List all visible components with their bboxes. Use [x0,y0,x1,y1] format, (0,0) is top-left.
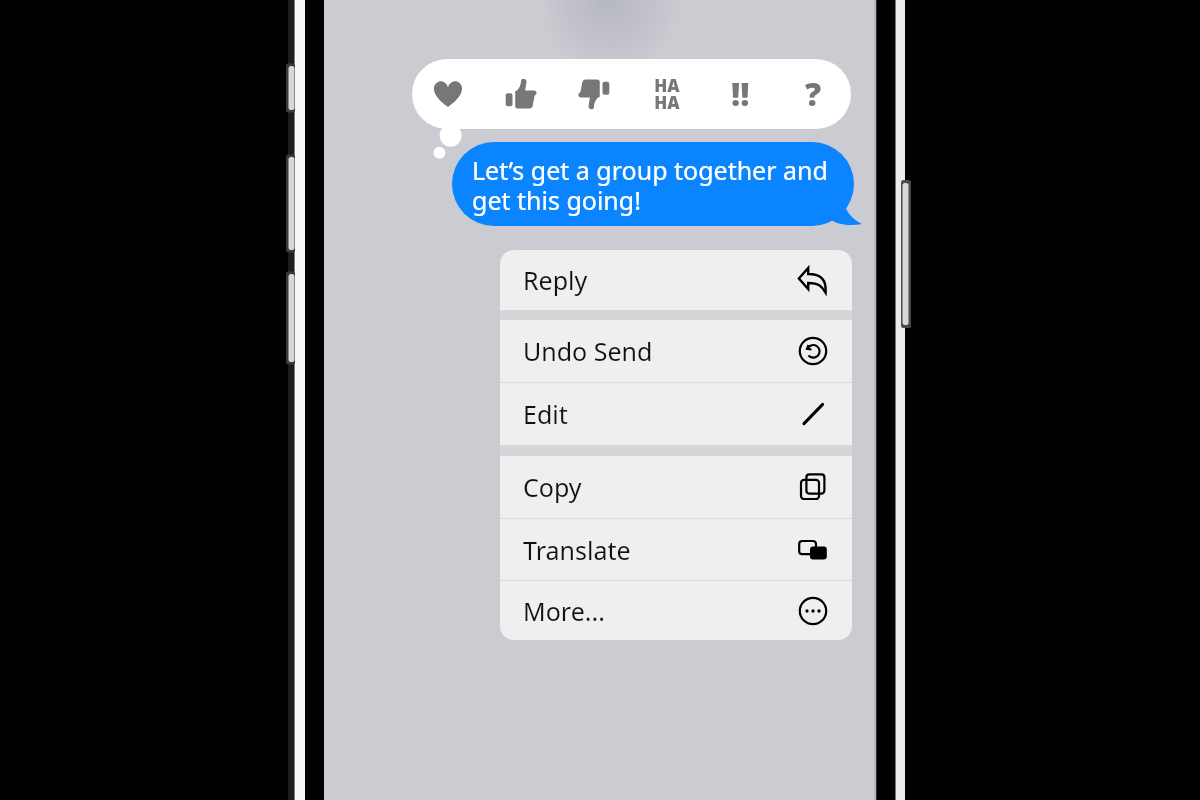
button[interactable]: Undo Send [500,320,852,382]
staticText: Edit [523,397,568,431]
staticText: ? [805,72,822,116]
button[interactable]: Haha [643,70,691,118]
button[interactable]: Translate [500,519,852,580]
staticText: HA HA [654,74,680,114]
button[interactable]: Reply [500,250,852,310]
staticText: More... [523,594,605,628]
button[interactable]: Edit [500,383,852,445]
staticText: Copy [523,470,582,504]
button[interactable]: Copy [500,456,852,518]
staticText: Translate [523,533,631,567]
button[interactable]: Thumbs down [570,70,618,118]
button[interactable]: Heart [424,70,472,118]
button[interactable]: More... [500,581,852,640]
button[interactable]: Exclamation [716,70,764,118]
button[interactable]: Thumbs up [497,70,545,118]
button[interactable]: Question [789,70,837,118]
staticText: Let’s get a group together and get this … [472,153,828,218]
staticText: !! [731,72,750,116]
staticText: Reply [523,263,588,297]
staticText: Undo Send [523,334,653,368]
